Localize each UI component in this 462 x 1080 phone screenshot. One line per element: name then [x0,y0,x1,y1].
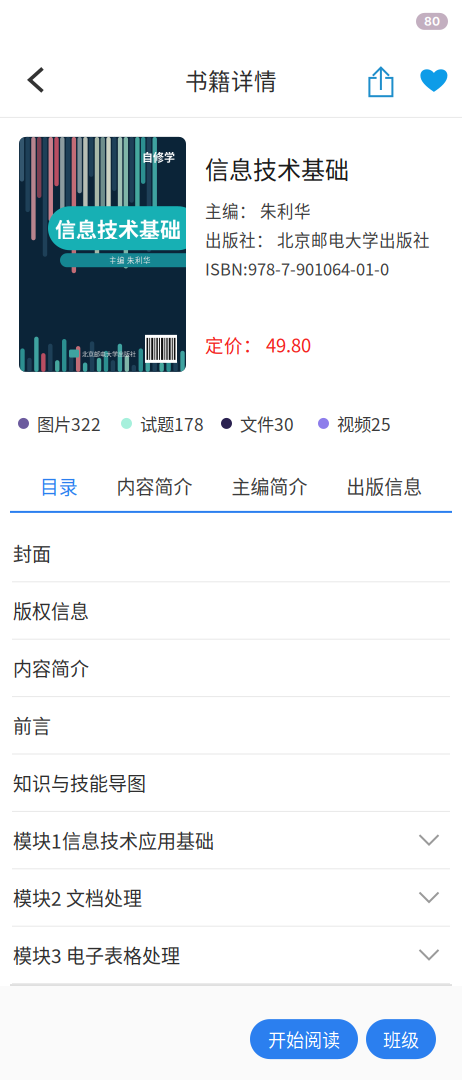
button[interactable]: 内容简介 [117,469,193,503]
staticText: 定价： 49.80 [205,331,311,358]
staticText: 模块1信息技术应用基础 [13,826,214,854]
staticText: 出版社： 北京邮电大学出版社 [205,227,430,251]
staticText: 书籍详情 [185,64,277,96]
staticText: 内容简介 [117,472,193,500]
staticText: 知识与技能导图 [13,769,146,796]
staticText: 出版信息 [346,472,422,500]
staticText: 目录 [40,472,78,500]
staticText: 模块2 文档处理 [13,884,142,911]
button[interactable]: 主编简介 [231,469,307,503]
staticText: 模块3 电子表格处理 [13,941,180,969]
button[interactable]: 模块2 文档处理 [0,869,462,927]
staticText: 80 [424,14,440,29]
staticText: 北京邮电大学出版社 [82,349,136,358]
button[interactable]: Favorite [410,50,458,110]
staticText: 自修学 [142,149,175,165]
staticText: 试题178 [140,411,204,436]
button[interactable]: 目录 [40,469,78,503]
staticText: 内容简介 [13,654,89,682]
staticText: 版权信息 [13,597,89,624]
staticText: ISBN:978-7-901064-01-0 [205,256,389,280]
button[interactable]: Share [352,50,410,110]
button[interactable]: 前言 [0,697,462,754]
button[interactable]: 内容简介 [0,640,462,697]
button[interactable]: 出版信息 [346,469,422,503]
staticText: 文件30 [240,411,294,436]
button[interactable]: 封面 [0,513,462,582]
button[interactable]: 知识与技能导图 [0,754,462,812]
button[interactable]: 模块3 电子表格处理 [0,927,462,984]
staticText: 封面 [13,539,51,567]
staticText: 视频25 [337,411,391,436]
button[interactable]: 开始阅读 [250,1019,358,1059]
staticText: 主编 朱利华 [109,255,151,266]
button[interactable]: 班级 [366,1019,436,1059]
button[interactable]: Back [7,50,65,110]
staticText: 主编： 朱利华 [205,199,311,223]
button[interactable]: 版权信息 [0,582,462,640]
staticText: 开始阅读 [268,1026,340,1052]
staticText: 班级 [383,1026,419,1052]
button[interactable]: 模块1信息技术应用基础 [0,812,462,869]
staticText: 图片322 [37,411,101,436]
staticText: 信息技术基础 [55,213,181,243]
staticText: 信息技术基础 [205,151,349,186]
staticText: 前言 [13,711,51,739]
staticText: 主编简介 [231,472,307,500]
